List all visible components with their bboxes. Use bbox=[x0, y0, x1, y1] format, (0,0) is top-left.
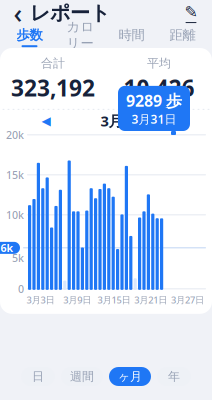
staticText: 20k bbox=[6, 128, 24, 142]
staticText: 3月27日 bbox=[171, 294, 204, 306]
button[interactable]: 前の月 bbox=[36, 111, 56, 131]
staticText: 6k bbox=[0, 241, 13, 255]
staticText: ヶ月 bbox=[118, 369, 142, 384]
staticText: 合計 bbox=[41, 56, 65, 71]
staticText: 平均 bbox=[147, 56, 171, 71]
button[interactable]: 日 bbox=[21, 367, 55, 386]
staticText: 歩数 bbox=[16, 27, 42, 43]
staticText: 距離 bbox=[169, 27, 195, 43]
staticText: ◀ bbox=[41, 114, 50, 128]
staticText: 0 bbox=[18, 282, 24, 296]
staticText: 3月31日 bbox=[131, 111, 176, 127]
staticText: 3月21日 bbox=[134, 294, 167, 306]
staticText: 3月3日 bbox=[26, 294, 54, 306]
staticText: レポート bbox=[30, 1, 110, 25]
staticText: 323,192 bbox=[11, 73, 95, 103]
button[interactable]: ヶ月 bbox=[109, 367, 151, 386]
button[interactable]: 歩数 bbox=[4, 26, 55, 48]
staticText: ▶ bbox=[173, 114, 182, 128]
staticText: 5k bbox=[12, 251, 24, 265]
staticText: 時間 bbox=[118, 27, 144, 43]
button[interactable]: 年 bbox=[157, 367, 191, 386]
staticText: ✎ bbox=[184, 3, 197, 21]
staticText: 10k bbox=[6, 208, 24, 222]
staticText: 10,426 bbox=[123, 73, 194, 103]
staticText: 3月 bbox=[100, 111, 123, 131]
staticText: 15k bbox=[6, 168, 24, 182]
button[interactable]: 次の月 bbox=[168, 111, 188, 131]
staticText: 週間 bbox=[70, 369, 94, 384]
staticText: 年 bbox=[168, 369, 180, 384]
staticText: 3月15日 bbox=[97, 294, 130, 306]
button[interactable]: 時間 bbox=[106, 26, 157, 48]
staticText: 3月9日 bbox=[63, 294, 91, 306]
staticText: 9289 歩 bbox=[126, 90, 182, 111]
button[interactable]: 週間 bbox=[61, 367, 103, 386]
staticText: 日 bbox=[32, 369, 44, 384]
button[interactable]: カロリー bbox=[55, 26, 106, 48]
button[interactable]: 距離 bbox=[157, 26, 208, 48]
staticText: カロリー bbox=[66, 19, 94, 51]
staticText: ‹ bbox=[13, 0, 22, 31]
button[interactable]: 編集 bbox=[178, 1, 204, 25]
button[interactable]: 戻る bbox=[6, 0, 30, 26]
